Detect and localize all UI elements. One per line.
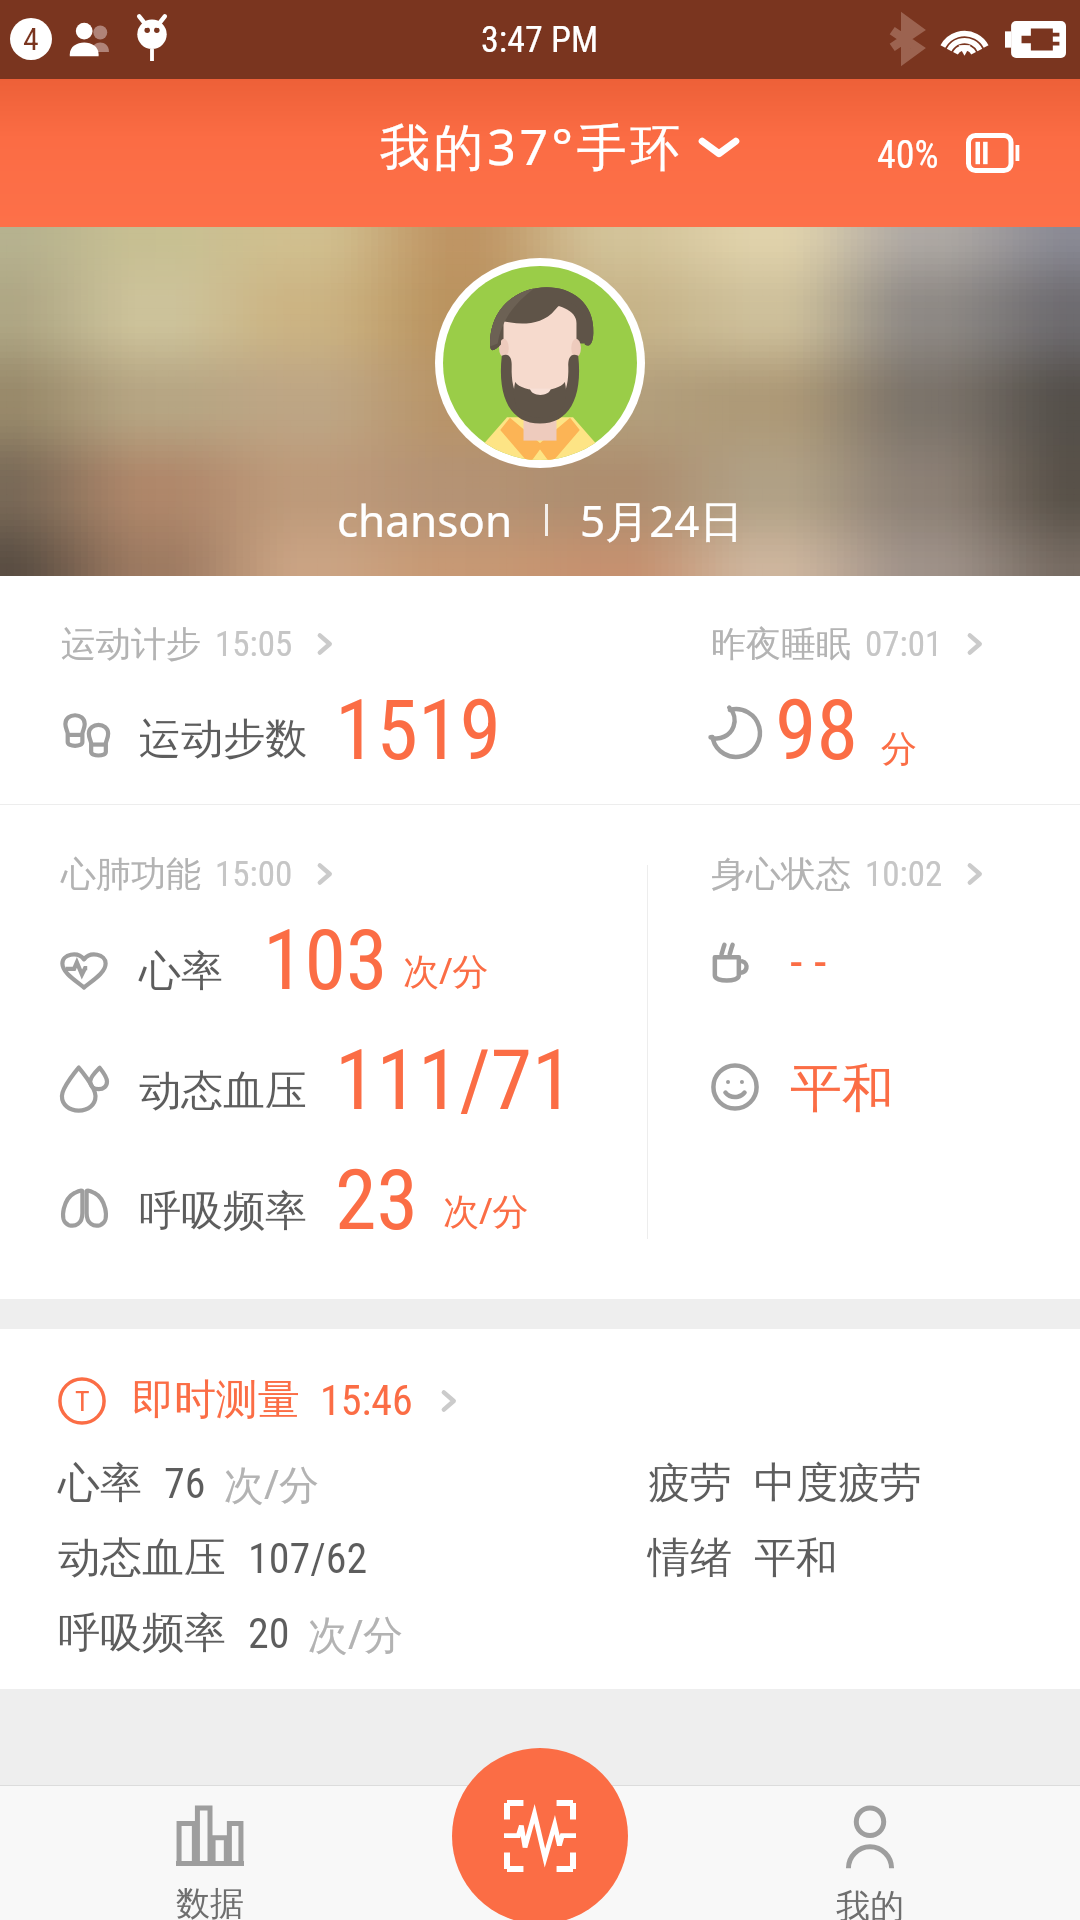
staticText: 07:01 [865, 624, 943, 665]
staticText: 次/分 [308, 1606, 403, 1661]
button[interactable]: 我的 [780, 1795, 960, 1920]
staticText: 次/分 [443, 1186, 529, 1235]
staticText: 分 [881, 726, 917, 771]
button[interactable]: 98 [711, 681, 971, 771]
staticText: 我的 [836, 1885, 904, 1920]
staticText: 昨夜睡眠 [711, 622, 851, 666]
staticText: 15:46 [320, 1376, 413, 1425]
button[interactable]: 数据 [120, 1795, 300, 1920]
staticText: 1519 [335, 681, 501, 771]
staticText: 103 [263, 911, 388, 1001]
staticText: 15:05 [215, 624, 293, 665]
staticText: chanson [337, 490, 513, 550]
staticText: 心率 [58, 1457, 142, 1510]
staticText: 我的37°手环 [380, 112, 684, 180]
staticText: 心率 [139, 945, 223, 998]
button[interactable]: 我的37°手环 [380, 112, 740, 180]
staticText: 心肺功能 [61, 852, 201, 896]
staticText: 身心状态 [711, 852, 851, 896]
staticText: 呼吸频率 [58, 1607, 226, 1660]
staticText: 情绪 [648, 1532, 732, 1585]
staticText: 98 [775, 681, 858, 771]
button[interactable]: 运动计步 [61, 622, 337, 666]
button[interactable]: 身心状态 [711, 852, 987, 896]
staticText: 即时测量 [132, 1374, 300, 1427]
staticText: 次/分 [403, 946, 489, 995]
button[interactable]: 运动步数 [61, 681, 531, 771]
button[interactable]: 平和 [711, 1031, 971, 1121]
button[interactable]: 呼吸频率 [61, 1151, 601, 1241]
staticText: 40% [877, 133, 939, 178]
staticText: 动态血压 [58, 1532, 226, 1585]
staticText: 平和 [754, 1532, 838, 1585]
staticText: 中度疲劳 [754, 1457, 922, 1510]
staticText: 运动步数 [139, 713, 307, 766]
staticText: 3:47 PM [481, 19, 599, 61]
staticText: 5月24日 [580, 490, 744, 550]
staticText: 107/62 [248, 1534, 368, 1583]
button[interactable]: T [58, 1374, 461, 1427]
button[interactable]: 昨夜睡眠 [711, 622, 987, 666]
button[interactable]: 即时测量 [452, 1748, 628, 1920]
button[interactable]: 动态血压 [61, 1031, 601, 1121]
staticText: 平和 [790, 1056, 894, 1122]
staticText: 111/71 [335, 1031, 574, 1121]
button[interactable]: 心肺功能 [61, 852, 337, 896]
staticText: 76 [164, 1459, 206, 1508]
staticText: 4 [23, 20, 39, 58]
staticText: 次/分 [224, 1456, 319, 1511]
staticText: - - [790, 933, 827, 992]
staticText: 动态血压 [139, 1065, 307, 1118]
staticText: 15:00 [215, 854, 293, 895]
staticText: T [75, 1385, 90, 1418]
staticText: 10:02 [865, 854, 943, 895]
staticText: 疲劳 [648, 1457, 732, 1510]
staticText: 20 [248, 1609, 290, 1658]
button[interactable]: 心率 [61, 911, 601, 1001]
staticText: 呼吸频率 [139, 1185, 307, 1238]
staticText: 运动计步 [61, 622, 201, 666]
staticText: 数据 [176, 1882, 244, 1920]
staticText: 23 [335, 1151, 418, 1241]
button[interactable]: - - [711, 911, 971, 1001]
